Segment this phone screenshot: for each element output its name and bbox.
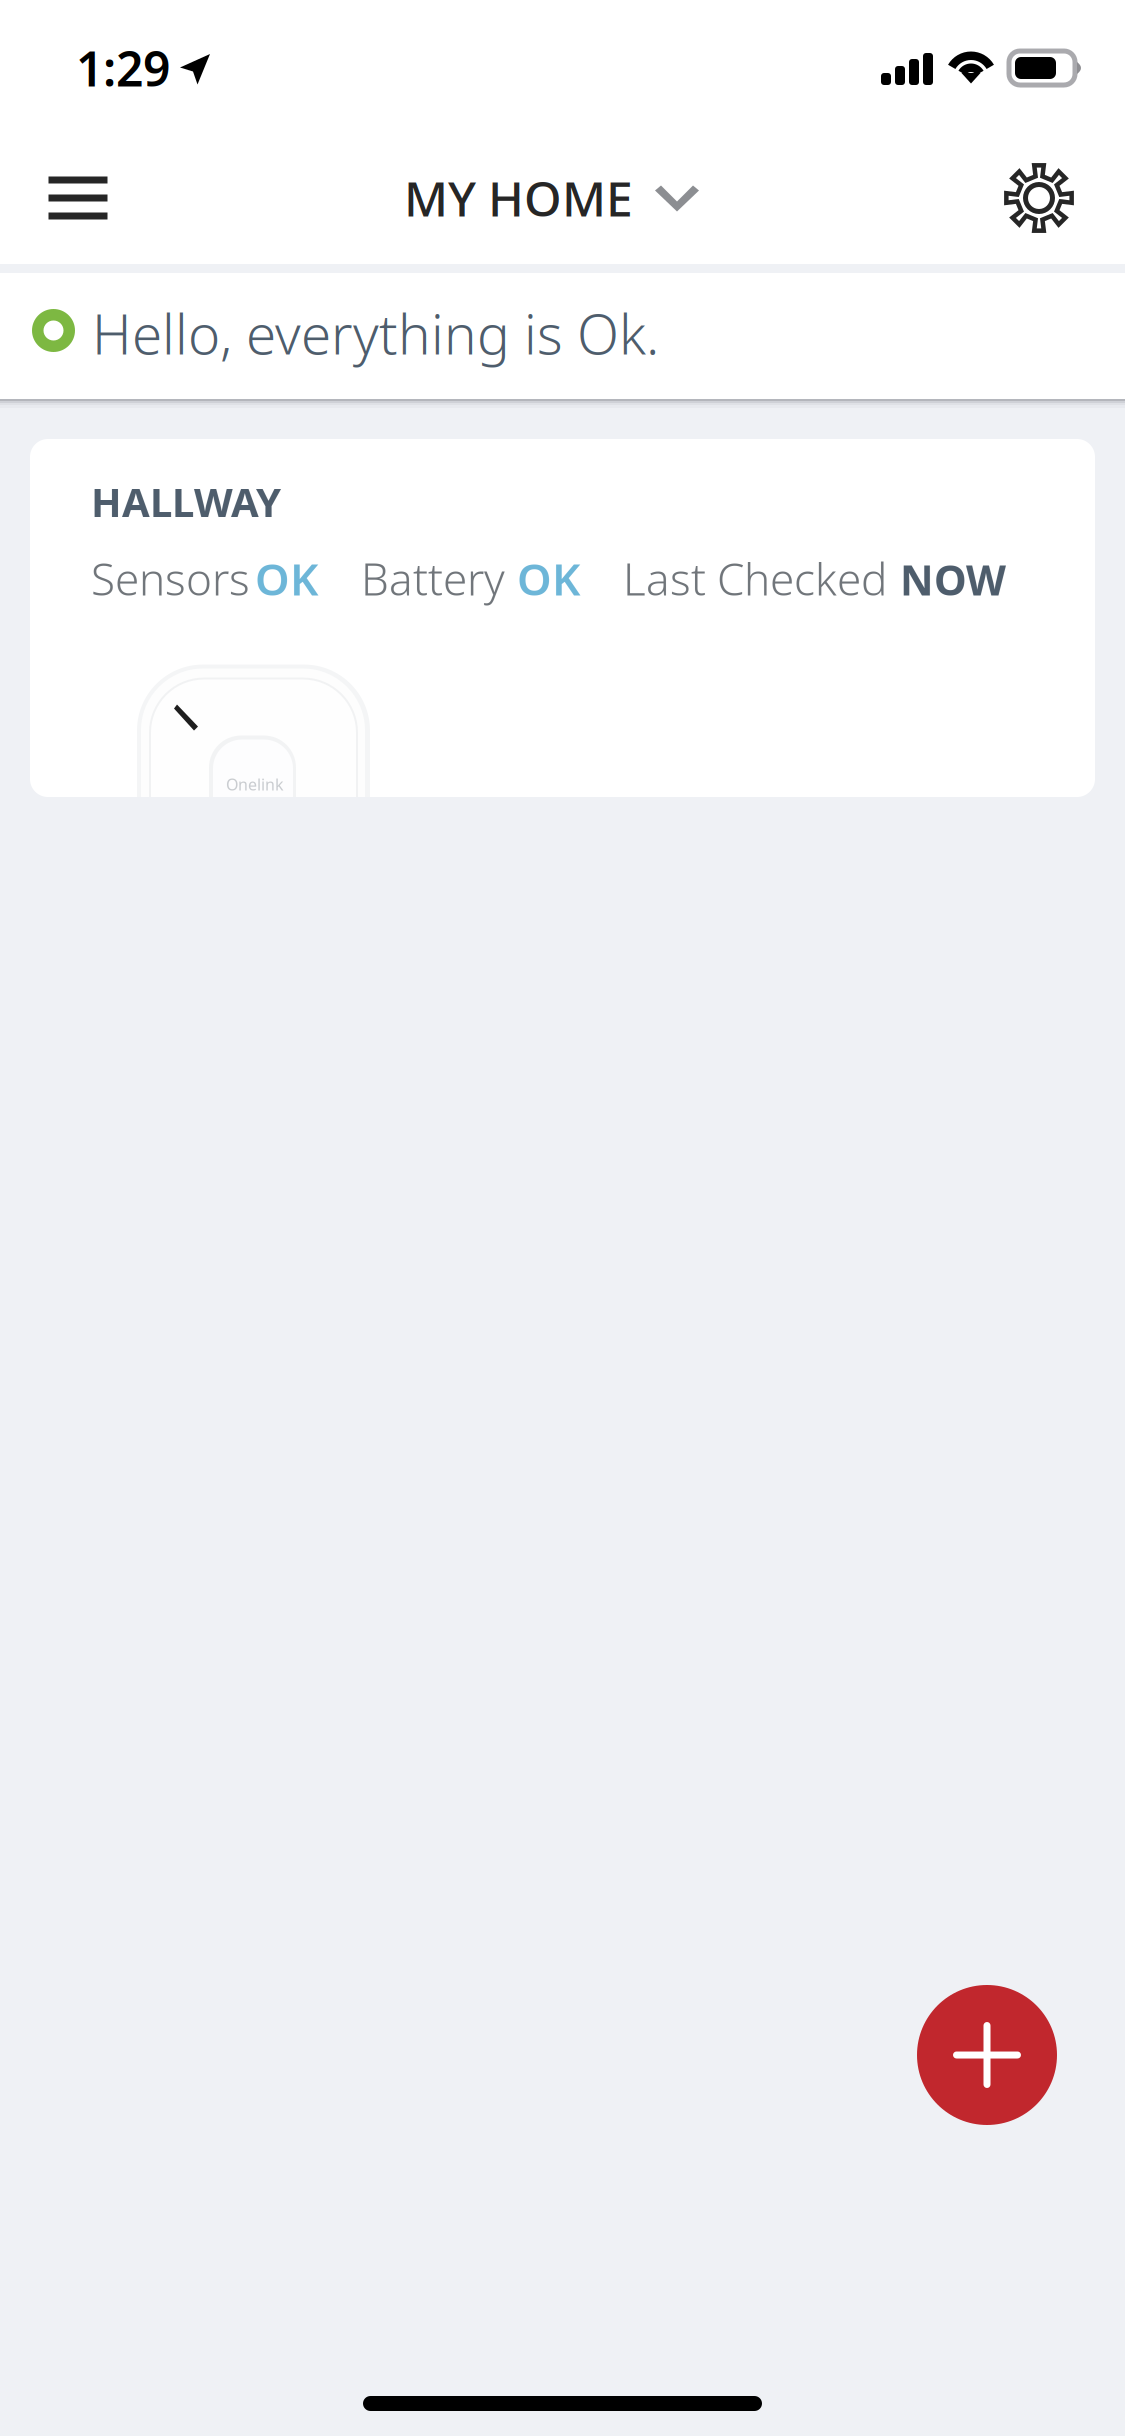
staticText: Last Checked [623,549,887,607]
staticText: MY HOME [404,166,633,230]
button[interactable]: HALLWAY [30,439,1095,797]
staticText: OK [255,549,318,607]
staticText: OK [517,549,580,607]
button[interactable]: Add device [917,1985,1057,2125]
staticText: Hello, everything is Ok. [92,297,659,370]
staticText: Battery [361,549,505,607]
staticText: NOW [900,552,1006,607]
staticText: Onelink [226,773,284,795]
staticText: HALLWAY [91,475,281,528]
staticText: 1:29 [76,36,170,100]
button[interactable]: MY HOME [404,132,699,264]
button[interactable]: Settings [981,132,1097,264]
staticText: Sensors [91,549,250,607]
button[interactable]: Menu [20,132,136,264]
